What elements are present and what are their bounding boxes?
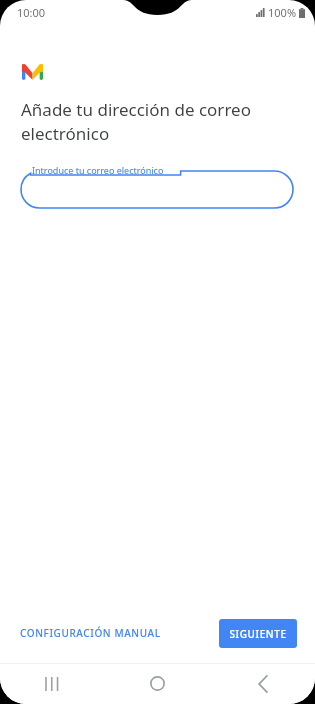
button[interactable]: Introduce tu correo electrónico [21,162,293,208]
staticText: 100% [268,5,297,20]
staticText: Añade tu dirección de correo electrónico [21,98,285,145]
staticText: 10:00 [17,5,46,20]
button[interactable]: Home [105,663,210,704]
staticText: CONFIGURACIÓN MANUAL [20,626,161,640]
button[interactable]: Recent apps [0,663,105,704]
button[interactable]: CONFIGURACIÓN MANUAL [18,620,163,646]
button[interactable]: SIGUIENTE [219,619,297,648]
button[interactable]: Back [210,663,315,704]
staticText: Introduce tu correo electrónico [32,164,164,176]
staticText: SIGUIENTE [229,627,287,641]
